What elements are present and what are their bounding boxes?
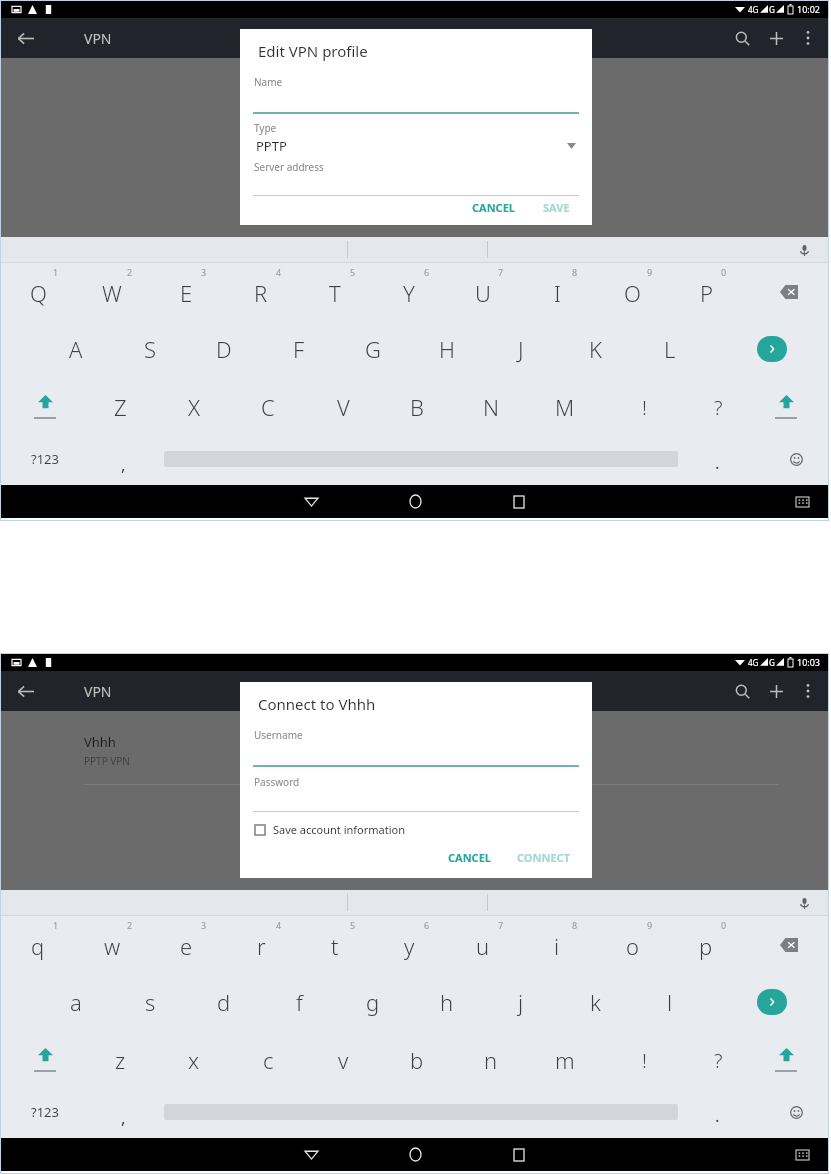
button[interactable]: G <box>342 320 404 378</box>
button[interactable]: a <box>45 973 107 1031</box>
button[interactable]: N <box>460 378 522 436</box>
button[interactable]: More options <box>793 676 823 706</box>
button[interactable]: ?123 <box>8 1089 82 1135</box>
button[interactable]: Enter <box>757 336 787 362</box>
button[interactable]: S <box>119 320 181 378</box>
button[interactable]: Hide keyboard <box>787 487 817 517</box>
button[interactable]: Add VPN profile <box>759 674 793 708</box>
button[interactable]: ! <box>613 1031 675 1089</box>
button[interactable]: P <box>675 263 737 320</box>
button[interactable]: Shift <box>761 382 811 432</box>
button[interactable]: v <box>312 1031 374 1089</box>
button[interactable]: M <box>534 378 596 436</box>
button[interactable]: Backspace <box>767 923 811 967</box>
button[interactable]: CANCEL <box>464 196 523 216</box>
button[interactable]: D <box>193 320 255 378</box>
button[interactable]: j <box>490 973 552 1031</box>
button[interactable]: t <box>304 916 366 973</box>
button[interactable]: g <box>342 973 404 1031</box>
button[interactable]: Enter <box>757 989 787 1015</box>
button[interactable]: d <box>193 973 255 1031</box>
button[interactable]: Back <box>8 21 42 55</box>
button[interactable]: . <box>686 436 748 482</box>
button[interactable]: Recent apps <box>499 1138 539 1171</box>
button[interactable]: z <box>89 1031 151 1089</box>
button[interactable]: q <box>7 916 69 973</box>
button[interactable]: h <box>416 973 478 1031</box>
button[interactable]: E <box>155 263 217 320</box>
button[interactable]: Back <box>291 1138 331 1171</box>
button[interactable]: C <box>237 378 299 436</box>
button[interactable]: ! <box>613 378 675 436</box>
button[interactable]: Save account information <box>240 820 416 839</box>
button[interactable]: H <box>416 320 478 378</box>
button[interactable]: Home <box>395 1138 435 1171</box>
button[interactable]: X <box>163 378 225 436</box>
button[interactable]: u <box>452 916 514 973</box>
button[interactable]: n <box>460 1031 522 1089</box>
button[interactable]: Add VPN profile <box>759 21 793 55</box>
button[interactable]: Recent apps <box>499 485 539 518</box>
button[interactable]: Hide keyboard <box>787 1140 817 1170</box>
button[interactable]: O <box>601 263 663 320</box>
button[interactable]: y <box>378 916 440 973</box>
button[interactable]: Emoji <box>779 1095 813 1129</box>
button[interactable]: Back <box>291 485 331 518</box>
button[interactable]: I <box>526 263 588 320</box>
button[interactable]: o <box>601 916 663 973</box>
button[interactable]: c <box>237 1031 299 1089</box>
button[interactable]: A <box>45 320 107 378</box>
button[interactable]: f <box>268 973 330 1031</box>
button[interactable]: Q <box>7 263 69 320</box>
button[interactable]: Voice input <box>793 892 815 914</box>
button[interactable]: e <box>155 916 217 973</box>
button[interactable]: Backspace <box>767 270 811 314</box>
button[interactable]: b <box>386 1031 448 1089</box>
button[interactable]: Y <box>378 263 440 320</box>
button[interactable]: K <box>564 320 626 378</box>
button[interactable]: s <box>119 973 181 1031</box>
button[interactable]: Shift <box>761 1035 811 1085</box>
button[interactable]: F <box>268 320 330 378</box>
button[interactable]: Z <box>89 378 151 436</box>
button[interactable]: More options <box>793 23 823 53</box>
button[interactable]: CANCEL <box>440 846 499 869</box>
button[interactable]: CONNECT <box>509 846 578 869</box>
button[interactable]: T <box>304 263 366 320</box>
button[interactable]: i <box>526 916 588 973</box>
button[interactable]: SAVE <box>535 196 578 216</box>
button[interactable]: Voice input <box>793 239 815 261</box>
button[interactable]: l <box>639 973 701 1031</box>
button[interactable]: Home <box>395 485 435 518</box>
button[interactable]: V <box>312 378 374 436</box>
button[interactable]: R <box>230 263 292 320</box>
button[interactable]: x <box>163 1031 225 1089</box>
button[interactable]: ?123 <box>8 436 82 482</box>
button[interactable]: ? <box>687 378 749 436</box>
button[interactable]: U <box>452 263 514 320</box>
button[interactable]: Shift <box>20 1035 70 1085</box>
button[interactable]: J <box>490 320 552 378</box>
staticText: 1 <box>53 266 59 278</box>
button[interactable]: k <box>564 973 626 1031</box>
button[interactable]: B <box>386 378 448 436</box>
button[interactable]: Vhhh <box>0 729 829 778</box>
button[interactable]: Emoji <box>779 442 813 476</box>
button[interactable]: Search <box>725 21 759 55</box>
button[interactable]: ? <box>687 1031 749 1089</box>
button[interactable]: Shift <box>20 382 70 432</box>
button[interactable]: , <box>92 1089 154 1135</box>
button[interactable]: Search <box>725 674 759 708</box>
button[interactable]: p <box>675 916 737 973</box>
button[interactable]: r <box>230 916 292 973</box>
button[interactable]: Back <box>8 674 42 708</box>
button[interactable]: PPTP <box>240 137 592 155</box>
button[interactable]: W <box>81 263 143 320</box>
button[interactable]: L <box>639 320 701 378</box>
button[interactable]: , <box>92 436 154 482</box>
button[interactable]: w <box>81 916 143 973</box>
button[interactable]: . <box>686 1089 748 1135</box>
button[interactable]: m <box>534 1031 596 1089</box>
